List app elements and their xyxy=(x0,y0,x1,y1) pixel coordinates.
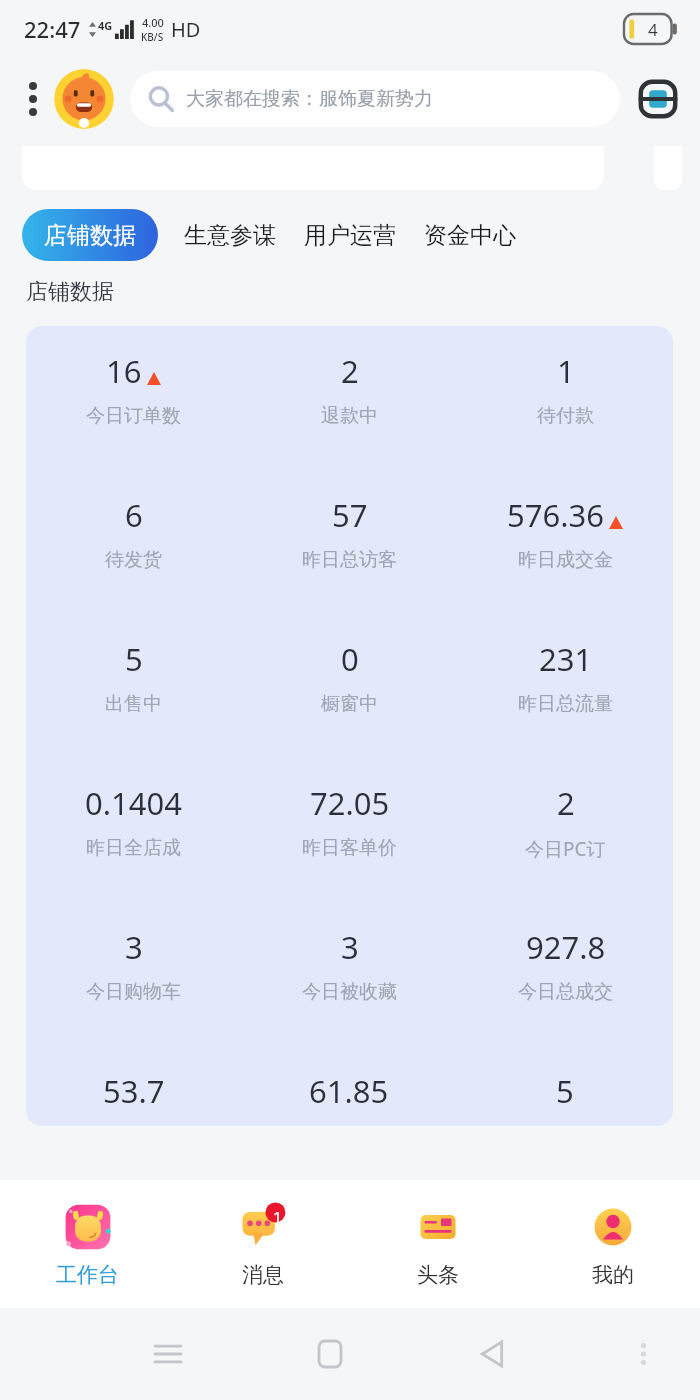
staticText: 大家都在搜索：服饰夏新势力 xyxy=(186,87,433,111)
staticText: 我的 xyxy=(592,1262,634,1288)
button[interactable]: Home xyxy=(302,1326,358,1382)
staticText: 927.8 xyxy=(526,926,606,968)
button[interactable]: Scan code xyxy=(634,75,682,123)
button[interactable]: 3 xyxy=(241,926,457,1070)
button[interactable]: 0 xyxy=(241,638,457,782)
staticText: 576.36 xyxy=(507,494,604,536)
staticText: 用户运营 xyxy=(304,221,396,250)
button[interactable]: 1 xyxy=(457,350,673,494)
button[interactable]: 16 xyxy=(26,326,673,1126)
button[interactable]: Profile avatar xyxy=(54,69,114,129)
staticText: 今日被收藏 xyxy=(302,980,397,1004)
button[interactable]: 头条 xyxy=(350,1180,525,1308)
staticText: 退款中 xyxy=(321,404,378,428)
staticText: 5 xyxy=(556,1070,574,1112)
staticText: 店铺数据 xyxy=(26,278,114,306)
button[interactable]: 57 xyxy=(241,494,457,638)
button[interactable]: 3 xyxy=(26,926,241,1070)
button[interactable]: Recent apps xyxy=(140,1326,196,1382)
staticText: 待付款 xyxy=(537,404,594,428)
staticText: 0 xyxy=(341,638,359,680)
button[interactable]: 16 xyxy=(26,350,241,494)
staticText: 消息 xyxy=(242,1262,284,1288)
staticText: 22:47 xyxy=(24,14,81,44)
staticText: 今日订单数 xyxy=(86,404,181,428)
button[interactable]: Back xyxy=(464,1326,520,1382)
button[interactable]: 工作台 xyxy=(0,1180,175,1308)
staticText: 昨日成交金 xyxy=(518,548,613,572)
staticText: 1 xyxy=(557,350,575,392)
staticText: 今日总成交 xyxy=(518,980,613,1004)
staticText: 今日PC订 xyxy=(525,836,606,862)
staticText: 资金中心 xyxy=(424,221,516,250)
staticText: 3 xyxy=(341,926,359,968)
button[interactable]: 大家都在搜索：服饰夏新势力 xyxy=(130,71,620,127)
button[interactable]: 资金中心 xyxy=(424,211,516,260)
button[interactable]: 53.7 xyxy=(26,1070,241,1126)
staticText: 3 xyxy=(125,926,143,968)
staticText: 橱窗中 xyxy=(321,692,378,716)
button[interactable]: 6 xyxy=(26,494,241,638)
button[interactable]: 店铺数据 xyxy=(22,209,158,261)
staticText: 今日购物车 xyxy=(86,980,181,1004)
button[interactable]: 5 xyxy=(457,1070,673,1126)
staticText: 2 xyxy=(557,782,575,824)
button[interactable]: More options xyxy=(18,71,48,127)
button[interactable]: 2 xyxy=(457,782,673,926)
staticText: 231 xyxy=(539,638,593,680)
staticText: 4G xyxy=(98,18,113,33)
button[interactable]: 576.36 xyxy=(457,494,673,638)
staticText: 生意参谋 xyxy=(184,221,276,250)
staticText: 6 xyxy=(125,494,143,536)
staticText: 待发货 xyxy=(105,548,162,572)
staticText: 昨日全店成 xyxy=(86,836,181,860)
button[interactable]: 用户运营 xyxy=(304,211,396,260)
staticText: 工作台 xyxy=(56,1262,119,1288)
button[interactable]: 231 xyxy=(457,638,673,782)
staticText: 16 xyxy=(106,350,142,392)
staticText: 53.7 xyxy=(103,1070,165,1112)
staticText: 2 xyxy=(341,350,359,392)
staticText: HD xyxy=(171,16,201,43)
staticText: 61.85 xyxy=(309,1070,389,1112)
button[interactable]: Menu xyxy=(626,1337,660,1371)
staticText: 57 xyxy=(332,494,368,536)
button[interactable]: 我的 xyxy=(525,1180,700,1308)
button[interactable]: 生意参谋 xyxy=(184,211,276,260)
button[interactable]: 5 xyxy=(26,638,241,782)
staticText: 头条 xyxy=(417,1262,459,1288)
button[interactable]: 61.85 xyxy=(241,1070,457,1126)
button[interactable]: 927.8 xyxy=(457,926,673,1070)
staticText: 昨日总访客 xyxy=(302,548,397,572)
button[interactable]: 0.1404 xyxy=(26,782,241,926)
staticText: 店铺数据 xyxy=(44,221,136,250)
staticText: 4 xyxy=(648,18,658,41)
staticText: 5 xyxy=(125,638,143,680)
staticText: 72.05 xyxy=(310,782,390,824)
staticText: 出售中 xyxy=(105,692,162,716)
staticText: 4.00 xyxy=(142,15,164,30)
staticText: 1 xyxy=(273,1206,282,1226)
button[interactable]: 2 xyxy=(241,350,457,494)
staticText: 0.1404 xyxy=(85,782,182,824)
button[interactable]: 1 xyxy=(175,1180,350,1308)
button[interactable]: 72.05 xyxy=(241,782,457,926)
staticText: KB/S xyxy=(141,30,164,44)
staticText: 昨日客单价 xyxy=(302,836,397,860)
staticText: 昨日总流量 xyxy=(518,692,613,716)
